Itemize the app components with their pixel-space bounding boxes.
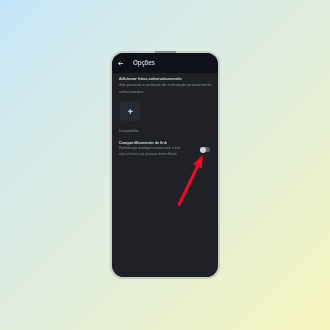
staticText: Compartilhar <box>119 129 139 133</box>
staticText: das pessoas e animais de estimação previ… <box>119 82 214 94</box>
button[interactable] <box>112 138 218 154</box>
button[interactable]: Add person <box>120 101 140 121</box>
button[interactable]: Back <box>114 57 127 70</box>
staticText: Permite que qualquer usuário com o link … <box>119 146 181 156</box>
staticText: Opções <box>133 58 155 66</box>
staticText: Adicionar fotos automaticamente <box>119 76 182 81</box>
button[interactable]: Link sharing toggle <box>200 146 210 153</box>
staticText: Compartilhamento de link <box>119 140 167 145</box>
